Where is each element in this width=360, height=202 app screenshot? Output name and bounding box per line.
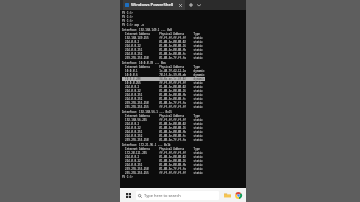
staticText: PS C:\> xyxy=(122,175,133,179)
button[interactable]: Type here to search xyxy=(136,191,219,200)
staticText: 224.0.0.22 01-00-5e-00-00-16 static xyxy=(122,44,203,48)
button[interactable]: File Explorer xyxy=(222,190,233,201)
staticText: Windows PowerShell xyxy=(131,2,174,8)
staticText: 255.255.255.255 ff-ff-ff-ff-ff-ff static xyxy=(122,171,203,175)
staticText: PS C:\> xyxy=(122,15,133,19)
button[interactable]: Google Chrome xyxy=(233,190,244,201)
staticText: 239.255.255.250 01-00-5e-7f-ff-fa static xyxy=(122,138,203,142)
staticText: 224.0.0.252 01-00-5e-00-00-fc static xyxy=(122,52,203,56)
staticText: 224.0.0.252 01-00-5e-00-00-fc static xyxy=(122,134,203,138)
staticText: Internet Address Physical Address Type xyxy=(122,114,200,118)
staticText: 224.0.0.251 01-00-5e-00-00-fb static xyxy=(122,48,203,52)
staticText: 224.0.0.251 01-00-5e-00-00-fb static xyxy=(122,163,203,167)
staticText: 224.0.0.252 01-00-5e-00-00-fc static xyxy=(122,97,203,101)
staticText: Internet Address Physical Address Type xyxy=(122,147,200,151)
staticText: Internet Address Physical Address Type xyxy=(122,65,200,69)
staticText: 10.0.0.208 34-8a-ae-1c-4f-02 dynamic xyxy=(122,77,205,81)
button[interactable]: Start xyxy=(122,189,134,201)
staticText: Interface: 192.168.56.1 --- 0x15 xyxy=(122,110,172,114)
staticText: Type here to search xyxy=(144,193,181,198)
staticText: 224.0.0.2 01-00-5e-00-00-02 static xyxy=(122,85,203,89)
button[interactable]: Close tab xyxy=(177,2,183,8)
staticText: 224.0.0.22 01-00-5e-00-00-16 static xyxy=(122,89,203,93)
staticText: PS C:\> xyxy=(122,19,133,23)
staticText: 10.0.0.6 70-1f-3c-39-f0-eb dynamic xyxy=(122,73,205,77)
staticText: Interface: 172.21.96.1 --- 0x1b xyxy=(122,143,171,147)
staticText: 239.255.255.250 01-00-5e-7f-ff-fa static xyxy=(122,56,203,60)
staticText: 224.0.0.251 01-00-5e-00-00-fb static xyxy=(122,93,203,97)
button[interactable]: Open new tab dropdown xyxy=(195,1,203,9)
staticText: 192.168.149.255 ff-ff-ff-ff-ff-ff static xyxy=(122,36,203,40)
staticText: 192.168.56.255 ff-ff-ff-ff-ff-ff static xyxy=(122,118,203,122)
staticText: 224.0.0.251 01-00-5e-00-00-fb static xyxy=(122,130,203,134)
staticText: Interface: 192.168.149.1 --- 0x8 xyxy=(122,28,172,32)
staticText: PS C:\> arp -a xyxy=(122,23,144,27)
staticText: 239.255.255.250 01-00-5e-7f-ff-fa static xyxy=(122,167,203,171)
staticText: 224.0.0.2 01-00-5e-00-00-02 static xyxy=(122,122,203,126)
staticText: 172.20.111.255 ff-ff-ff-ff-ff-ff static xyxy=(122,151,203,155)
staticText: 255.255.255.255 ff-ff-ff-ff-ff-ff static xyxy=(122,105,203,109)
staticText: PS C:\> xyxy=(122,11,133,15)
staticText: 224.0.0.2 01-00-5e-00-00-02 static xyxy=(122,40,203,44)
button[interactable]: Windows PowerShell xyxy=(123,0,185,10)
staticText: Internet Address Physical Address Type xyxy=(122,32,200,36)
staticText: 224.0.0.2 01-00-5e-00-00-02 static xyxy=(122,155,203,159)
staticText: Interface: 10.0.0.39 --- 0xa xyxy=(122,61,166,65)
staticText: 10.0.0.255 ff-ff-ff-ff-ff-ff static xyxy=(122,81,203,85)
staticText: 224.0.0.22 01-00-5e-00-00-16 static xyxy=(122,159,203,163)
staticText: 10.0.0.1 1c-40-7f-42-12-1a dynamic xyxy=(122,69,205,73)
staticText: 224.0.0.22 01-00-5e-00-00-16 static xyxy=(122,126,203,130)
staticText: 239.255.255.250 01-00-5e-7f-ff-fa static xyxy=(122,101,203,105)
button[interactable]: New tab xyxy=(187,1,195,9)
